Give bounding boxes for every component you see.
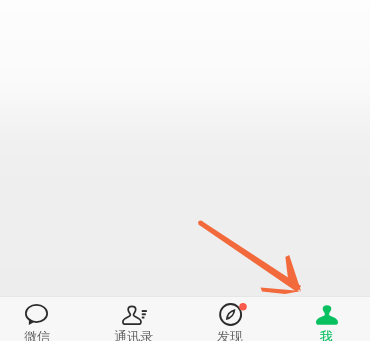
staticText: 发现 — [217, 328, 243, 341]
button[interactable]: Contacts tab — [85, 296, 182, 341]
button[interactable]: Discover tab — [181, 296, 278, 341]
staticText: 微信 — [24, 328, 50, 341]
button[interactable]: WeChat chats tab — [0, 296, 85, 341]
staticText: 我 — [320, 328, 333, 341]
staticText: 通讯录 — [114, 328, 153, 341]
button[interactable]: Me profile tab — [278, 296, 370, 341]
